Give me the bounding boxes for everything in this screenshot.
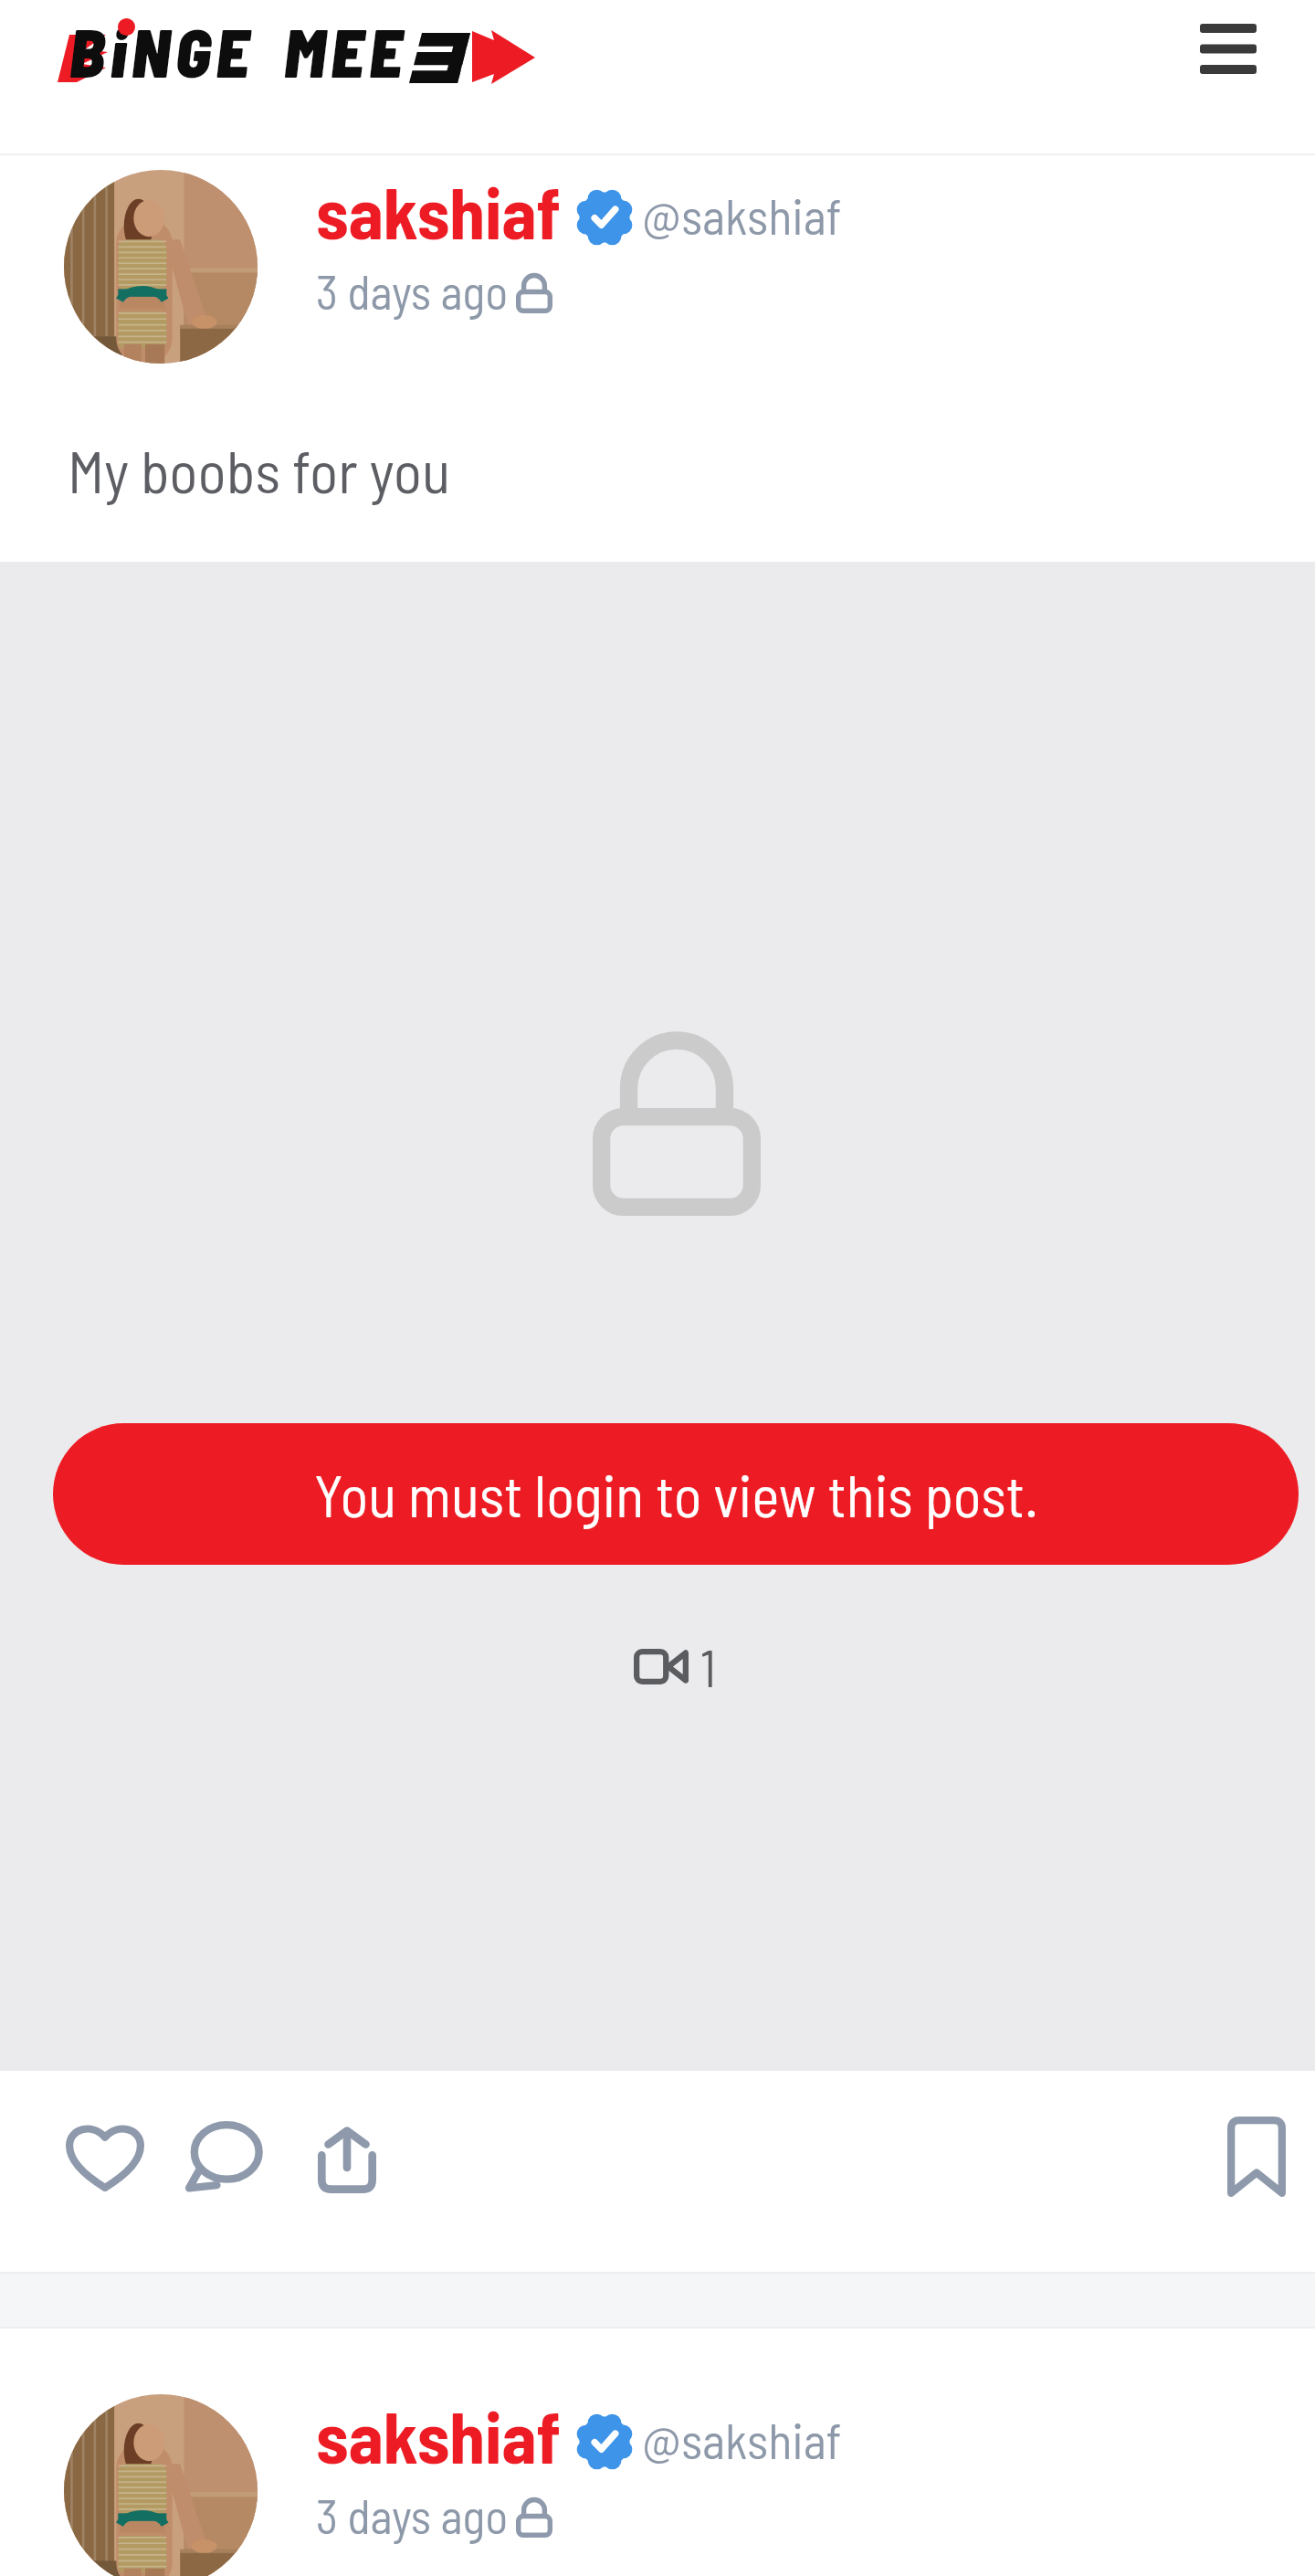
button[interactable]: Comment xyxy=(169,2106,284,2208)
button[interactable]: Open menu xyxy=(1180,0,1277,97)
staticText: @sakshiaf xyxy=(642,2410,842,2469)
staticText: BiNGE xyxy=(69,11,255,91)
staticText: My boobs for you xyxy=(68,434,451,505)
button[interactable]: Like xyxy=(47,2106,163,2208)
staticText: You must login to view this post. xyxy=(314,1459,1038,1529)
staticText: @sakshiaf xyxy=(642,185,842,245)
staticText: sakshiaf xyxy=(316,2392,561,2478)
button[interactable]: Binge Meee home xyxy=(37,0,566,110)
staticText: 3 days ago xyxy=(316,262,509,319)
staticText: MEE xyxy=(284,11,408,91)
button[interactable]: sakshiaf profile photo xyxy=(64,2394,258,2576)
staticText: sakshiaf xyxy=(316,168,561,254)
staticText: 3 days ago xyxy=(316,2486,509,2543)
staticText: 1 xyxy=(700,1636,716,1697)
button[interactable]: You must login to view this post. xyxy=(53,1423,1299,1565)
button[interactable]: Share xyxy=(289,2106,405,2208)
button[interactable]: sakshiaf profile photo xyxy=(64,170,258,364)
button[interactable]: Save xyxy=(1199,2106,1314,2208)
